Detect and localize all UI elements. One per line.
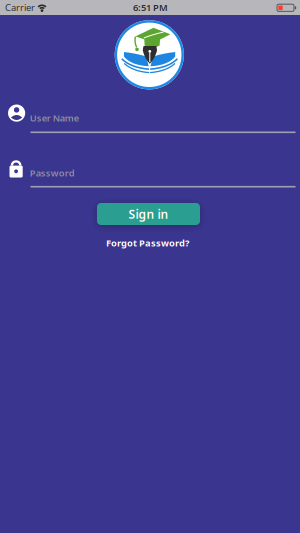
button[interactable]: Forgot Password? (106, 237, 189, 249)
staticText: Carrier (5, 1, 35, 14)
staticText: User Name (30, 112, 79, 124)
staticText: 6:51 PM (133, 1, 168, 14)
staticText: Sign in (128, 206, 168, 222)
button[interactable]: User Name (3, 102, 297, 137)
staticText: Password (30, 167, 75, 179)
button[interactable]: Sign in (97, 203, 200, 225)
button[interactable]: Password (3, 154, 297, 189)
staticText: Forgot Password? (106, 237, 189, 249)
